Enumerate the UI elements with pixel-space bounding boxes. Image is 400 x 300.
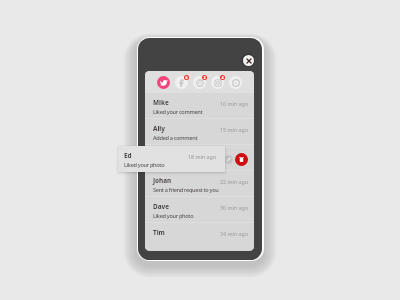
- staticText: 22 min ago: [220, 178, 249, 185]
- button[interactable]: Tim: [145, 223, 254, 249]
- staticText: Ed: [124, 151, 132, 160]
- button[interactable]: Johan: [145, 171, 254, 197]
- staticText: 4: [221, 75, 224, 80]
- button[interactable]: Edit: [224, 155, 233, 164]
- button[interactable]: Delete: [235, 153, 248, 166]
- staticText: Liked your comment: [153, 108, 203, 116]
- staticText: 30 min ago: [220, 204, 249, 211]
- staticText: Liked your photo: [153, 212, 194, 220]
- staticText: 10 min ago: [220, 100, 249, 107]
- staticText: Tim: [153, 228, 165, 237]
- staticText: 6: [185, 75, 188, 80]
- staticText: Sent a friend request to you: [153, 186, 219, 194]
- staticText: 15 min ago: [220, 126, 249, 133]
- staticText: 2: [203, 75, 206, 80]
- button[interactable]: WhatsApp: [229, 76, 242, 89]
- staticText: 18 min ago: [188, 153, 217, 160]
- staticText: Dave: [153, 202, 169, 211]
- button[interactable]: Close: [241, 53, 255, 67]
- button[interactable]: Dribbble: [193, 76, 206, 89]
- button[interactable]: [145, 145, 254, 171]
- staticText: Mike: [153, 98, 169, 107]
- staticText: Ally: [153, 124, 165, 133]
- button[interactable]: Ally: [145, 119, 254, 145]
- button[interactable]: Instagram: [211, 76, 224, 89]
- button[interactable]: Dave: [145, 197, 254, 223]
- staticText: 34 min ago: [220, 230, 249, 237]
- button[interactable]: Ed: [118, 146, 225, 172]
- button[interactable]: Mike: [145, 93, 254, 119]
- staticText: Liked your photo: [124, 161, 165, 169]
- button[interactable]: Facebook: [175, 76, 188, 89]
- staticText: Johan: [153, 176, 172, 185]
- button[interactable]: Twitter: [157, 76, 170, 89]
- staticText: Added a comment: [153, 134, 198, 142]
